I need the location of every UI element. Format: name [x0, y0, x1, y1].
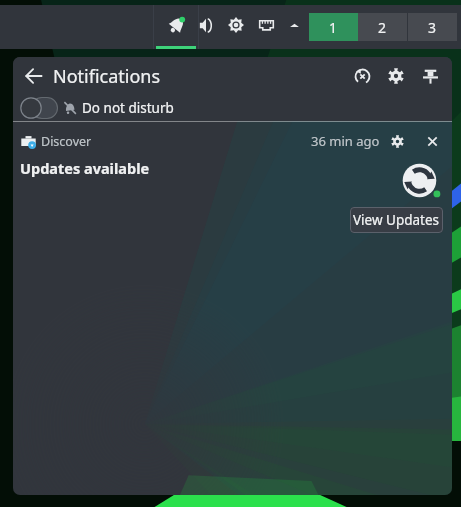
button[interactable]: View Updates: [350, 207, 443, 233]
staticText: 2: [378, 18, 387, 37]
staticText: Do not disturb: [82, 99, 174, 117]
button[interactable]: Settings: [379, 59, 413, 93]
button[interactable]: Show hidden icons: [283, 5, 305, 49]
staticText: Notifications: [53, 64, 161, 89]
staticText: 36 min ago: [311, 132, 380, 150]
button[interactable]: 1: [309, 13, 358, 41]
button[interactable]: Network: [252, 5, 281, 49]
staticText: 1: [329, 18, 338, 37]
button[interactable]: Volume: [199, 5, 213, 49]
button[interactable]: Back: [19, 61, 49, 91]
staticText: Updates available: [20, 158, 150, 178]
button[interactable]: Notifications: [154, 5, 198, 49]
button[interactable]: Close: [420, 129, 444, 153]
button[interactable]: Clear history: [345, 59, 379, 93]
button[interactable]: Pin: [413, 59, 447, 93]
staticText: Discover: [41, 133, 92, 150]
staticText: View Updates: [353, 211, 440, 229]
staticText: 3: [428, 18, 437, 37]
button[interactable]: 3: [408, 13, 457, 41]
button[interactable]: 2: [358, 13, 407, 41]
button[interactable]: Do not disturb: [13, 95, 452, 121]
button[interactable]: Notification settings: [385, 129, 409, 153]
button[interactable]: Settings: [222, 5, 250, 49]
